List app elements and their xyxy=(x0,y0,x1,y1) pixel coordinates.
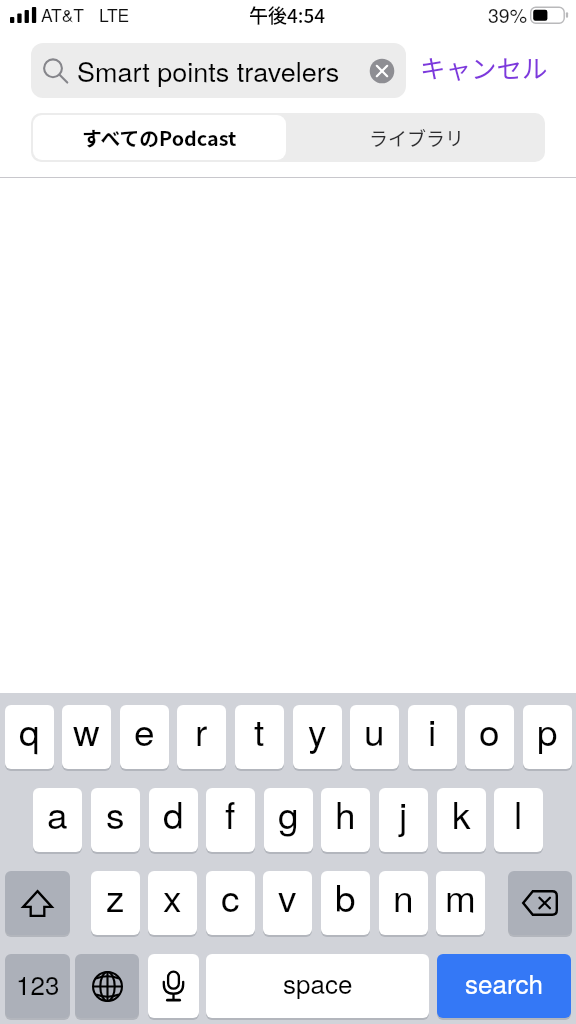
button[interactable]: x xyxy=(148,871,197,935)
button[interactable]: f xyxy=(206,788,255,852)
button[interactable]: l xyxy=(494,788,543,852)
staticText: a xyxy=(47,788,68,840)
button[interactable]: Smart points travelers xyxy=(31,43,406,98)
button[interactable]: k xyxy=(437,788,486,852)
staticText: Smart points travelers xyxy=(77,51,340,90)
staticText: 39% xyxy=(488,1,528,29)
staticText: l xyxy=(514,788,523,840)
button[interactable]: a xyxy=(33,788,82,852)
button[interactable]: b xyxy=(321,871,370,935)
staticText: AT&T xyxy=(41,2,85,27)
staticText: s xyxy=(106,788,125,840)
button[interactable]: z xyxy=(91,871,140,935)
staticText: h xyxy=(335,788,356,840)
staticText: ライブラリ xyxy=(369,124,465,152)
staticText: 123 xyxy=(16,965,60,1002)
button[interactable]: g xyxy=(264,788,313,852)
staticText: y xyxy=(308,705,327,757)
staticText: z xyxy=(106,871,125,923)
button[interactable]: すべてのPodcast xyxy=(33,115,286,160)
staticText: v xyxy=(278,871,297,923)
button[interactable]: s xyxy=(91,788,140,852)
button[interactable]: d xyxy=(149,788,198,852)
button[interactable]: ライブラリ xyxy=(288,113,545,162)
button[interactable]: space xyxy=(206,954,429,1018)
button[interactable]: n xyxy=(379,871,428,935)
staticText: o xyxy=(479,705,500,757)
staticText: c xyxy=(221,871,240,923)
staticText: r xyxy=(195,705,208,757)
button[interactable]: o xyxy=(465,705,514,769)
staticText: 午後4:54 xyxy=(249,1,326,29)
staticText: LTE xyxy=(99,2,130,27)
staticText: search xyxy=(465,964,543,1001)
staticText: t xyxy=(254,705,265,757)
button[interactable]: Dictation xyxy=(148,954,199,1018)
staticText: p xyxy=(537,705,558,757)
button[interactable]: u xyxy=(350,705,399,769)
staticText: f xyxy=(225,788,236,840)
staticText: b xyxy=(335,871,356,923)
staticText: キャンセル xyxy=(420,48,548,85)
staticText: j xyxy=(399,788,408,840)
button[interactable]: w xyxy=(62,705,111,769)
button[interactable]: t xyxy=(235,705,284,769)
staticText: q xyxy=(19,705,40,757)
button[interactable]: h xyxy=(321,788,370,852)
button[interactable]: Backspace xyxy=(508,871,572,935)
staticText: d xyxy=(163,788,184,840)
button[interactable]: Change keyboard xyxy=(75,954,139,1018)
staticText: i xyxy=(428,705,437,757)
button[interactable]: j xyxy=(379,788,428,852)
staticText: e xyxy=(134,705,155,757)
button[interactable]: Clear text xyxy=(364,53,400,89)
button[interactable]: キャンセル xyxy=(420,48,548,85)
staticText: w xyxy=(73,705,100,757)
button[interactable]: r xyxy=(177,705,226,769)
staticText: space xyxy=(283,964,353,1001)
staticText: n xyxy=(393,871,414,923)
button[interactable]: i xyxy=(408,705,457,769)
staticText: すべてのPodcast xyxy=(82,123,237,152)
button[interactable]: Numbers xyxy=(5,954,70,1018)
button[interactable]: search xyxy=(437,954,571,1018)
staticText: g xyxy=(278,788,299,840)
staticText: x xyxy=(163,871,182,923)
staticText: u xyxy=(364,705,385,757)
button[interactable]: y xyxy=(293,705,342,769)
button[interactable]: e xyxy=(120,705,169,769)
button[interactable]: c xyxy=(206,871,255,935)
button[interactable]: m xyxy=(436,871,485,935)
button[interactable]: p xyxy=(523,705,572,769)
staticText: k xyxy=(452,788,471,840)
button[interactable]: Shift xyxy=(5,871,70,935)
staticText: m xyxy=(445,871,476,923)
button[interactable]: v xyxy=(263,871,312,935)
button[interactable]: q xyxy=(5,705,54,769)
